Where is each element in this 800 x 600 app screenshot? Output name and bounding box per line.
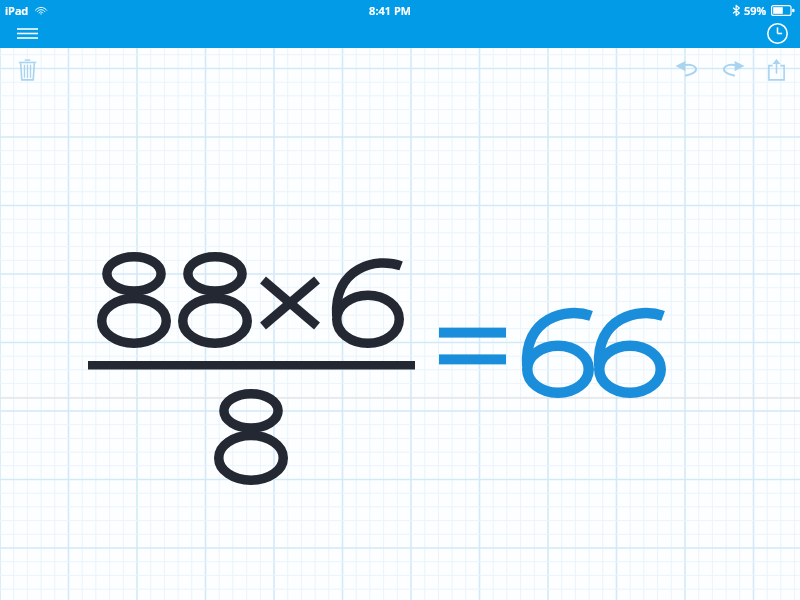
button[interactable]: Undo — [670, 51, 706, 87]
staticText: 59% — [744, 3, 767, 18]
button[interactable]: Menu — [8, 20, 46, 46]
staticText: iPad — [5, 3, 29, 18]
button[interactable]: Drawing canvas — [0, 90, 800, 600]
button[interactable]: History — [760, 19, 794, 47]
staticText: 8:41 PM — [369, 3, 411, 18]
button[interactable]: Delete — [8, 50, 46, 88]
button[interactable]: Redo — [714, 51, 750, 87]
button[interactable]: Share — [758, 51, 794, 87]
